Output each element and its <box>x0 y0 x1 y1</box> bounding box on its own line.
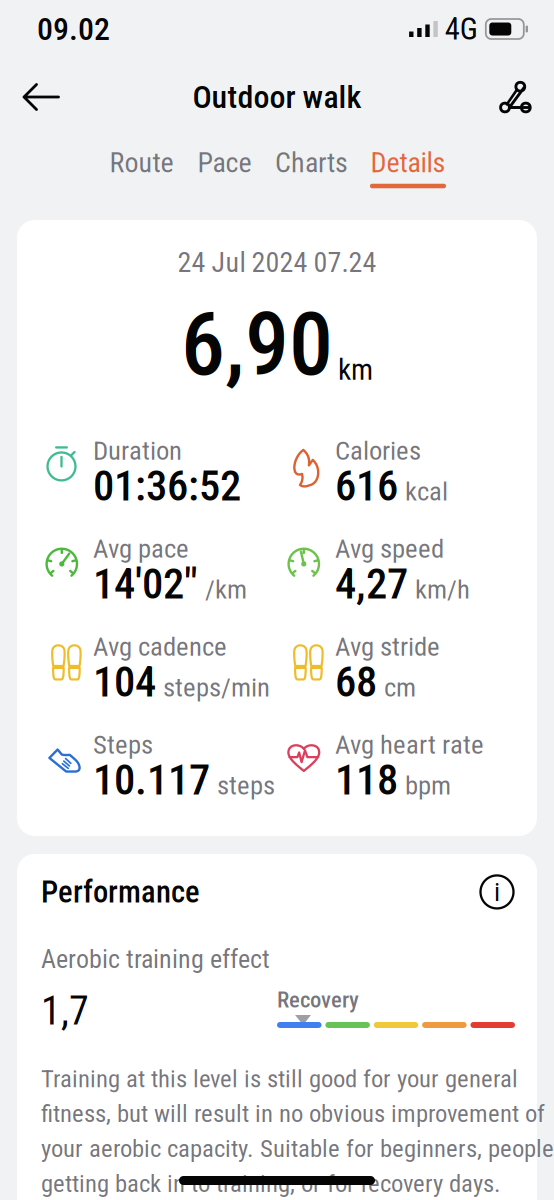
staticText: Avg pace <box>93 533 189 564</box>
staticText: 14'02" <box>93 559 198 609</box>
staticText: Outdoor walk <box>192 78 361 116</box>
staticText: Steps <box>93 729 153 760</box>
staticText: km <box>338 353 373 387</box>
staticText: kcal <box>405 476 448 507</box>
staticText: Recovery <box>277 986 359 1013</box>
staticText: Training at this level is still good for… <box>41 1064 554 1198</box>
staticText: 09.02 <box>37 10 110 48</box>
staticText: 104 <box>93 657 156 707</box>
staticText: 616 <box>335 461 398 511</box>
staticText: 118 <box>335 755 398 805</box>
button[interactable]: Back <box>8 68 74 126</box>
button[interactable]: Charts <box>263 150 359 188</box>
staticText: 10.117 <box>93 755 210 805</box>
button[interactable]: Route <box>97 150 185 188</box>
button[interactable]: Share <box>484 66 546 128</box>
staticText: Avg speed <box>335 533 444 564</box>
staticText: 1,7 <box>41 987 89 1034</box>
staticText: 4,27 <box>335 559 408 609</box>
staticText: 6,90 <box>181 293 333 396</box>
staticText: bpm <box>405 770 451 801</box>
staticText: steps <box>217 770 275 801</box>
staticText: Performance <box>41 874 200 910</box>
staticText: Route <box>109 146 173 179</box>
staticText: km/h <box>415 574 470 605</box>
button[interactable]: Info <box>479 874 515 910</box>
staticText: 68 <box>335 657 377 707</box>
staticText: Aerobic training effect <box>41 944 270 974</box>
staticText: Details <box>370 146 445 179</box>
staticText: Avg cadence <box>93 631 227 662</box>
staticText: Charts <box>275 146 348 179</box>
staticText: i <box>494 876 500 908</box>
staticText: Avg heart rate <box>335 729 484 760</box>
staticText: Calories <box>335 435 421 466</box>
staticText: 01:36:52 <box>93 461 241 511</box>
staticText: cm <box>384 672 416 703</box>
staticText: /km <box>205 574 247 605</box>
staticText: Pace <box>197 146 251 179</box>
staticText: Avg stride <box>335 631 440 662</box>
staticText: 4G <box>445 11 478 47</box>
staticText: Duration <box>93 435 182 466</box>
button[interactable]: Pace <box>185 150 263 188</box>
staticText: 24 Jul 2024 07.24 <box>177 246 376 279</box>
button[interactable]: Details <box>359 150 456 188</box>
staticText: steps/min <box>163 672 270 703</box>
